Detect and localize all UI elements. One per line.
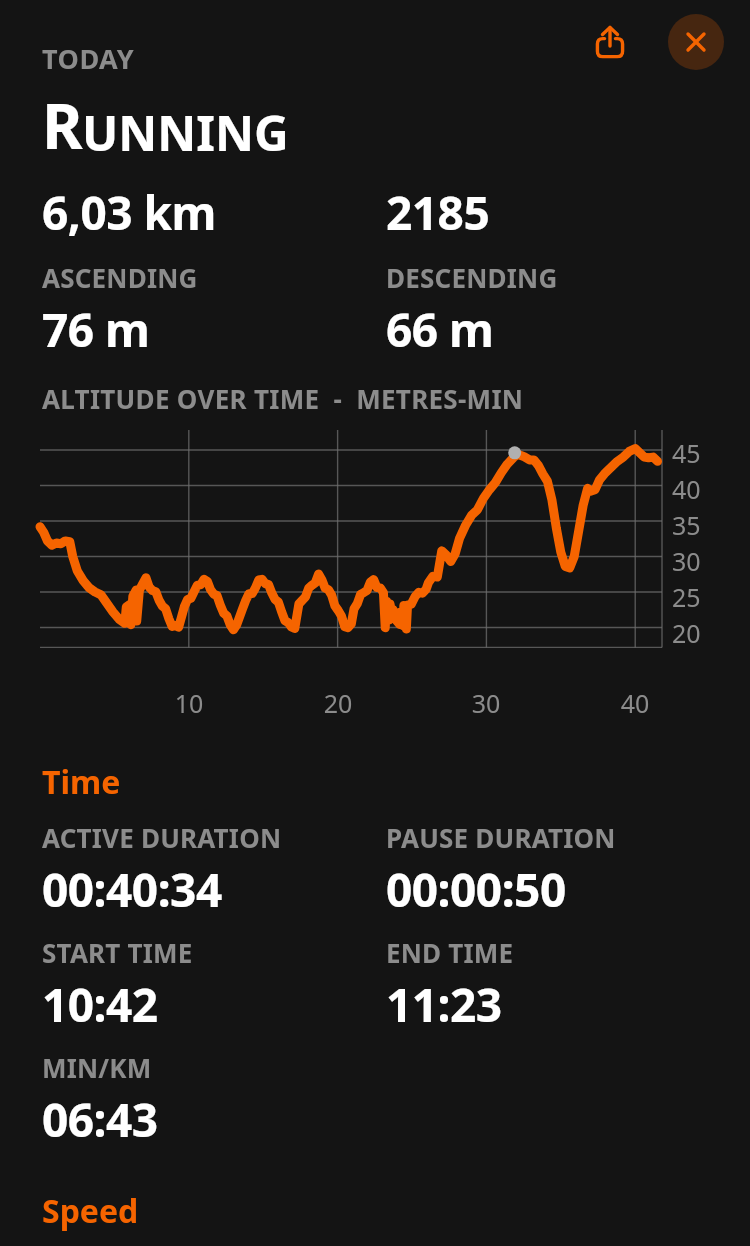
button[interactable]: Close [668,14,724,70]
staticText: ASCENDING [42,260,198,295]
staticText: 00:00:50 [386,858,566,921]
staticText: MIN/KM [42,1050,152,1085]
staticText: 00:40:34 [42,858,222,921]
staticText: 30 [466,686,506,720]
staticText: 20 [318,686,358,720]
staticText: 76 m [42,298,150,361]
staticText: ACTIVE DURATION [42,820,282,855]
staticText: DESCENDING [386,260,558,295]
staticText: 35 [672,508,701,542]
staticText: ALTITUDE OVER TIME - METRES-MIN [42,381,524,416]
staticText: R [42,83,82,167]
staticText: 25 [672,580,701,614]
staticText: 10 [169,686,209,720]
staticText: 66 m [386,298,494,361]
staticText: 6,03 km [42,181,386,244]
staticText: UNNING [82,100,289,165]
staticText: PAUSE DURATION [386,820,616,855]
staticText: START TIME [42,935,193,970]
staticText: 2185 [386,181,490,244]
staticText: Speed [42,1189,139,1233]
staticText: Time [42,760,121,804]
staticText: 10:42 [42,973,158,1036]
staticText: 11:23 [386,973,502,1036]
staticText: TODAY [42,40,135,77]
button[interactable]: Share [582,14,638,70]
staticText: END TIME [386,935,514,970]
staticText: 45 [672,436,701,470]
staticText: 06:43 [42,1088,158,1151]
staticText: 30 [672,544,701,578]
staticText: 20 [672,616,701,650]
staticText: 40 [672,472,701,506]
staticText: 40 [615,686,655,720]
